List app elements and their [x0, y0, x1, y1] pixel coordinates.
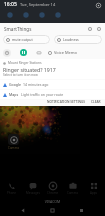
staticText: mute output	[12, 37, 33, 42]
button[interactable]: Messages	[24, 182, 41, 195]
button[interactable]: Camera	[64, 182, 81, 195]
staticText: 16:05	[4, 1, 17, 8]
staticText: Google	[9, 82, 21, 87]
other: Camera app	[8, 134, 19, 145]
staticText: Chrome	[47, 191, 59, 195]
button[interactable]: Devices	[85, 24, 94, 33]
staticText: SmartThings	[4, 26, 32, 32]
button[interactable]: Quick setting	[4, 10, 16, 20]
button[interactable]: Quick setting	[36, 10, 48, 20]
button[interactable]: Home	[47, 205, 58, 216]
staticText: Messages	[26, 191, 40, 195]
button[interactable]: Quick setting	[20, 10, 32, 20]
button[interactable]: Maps	[0, 90, 105, 99]
button[interactable]: Mount Ringer Stations	[0, 59, 105, 79]
button[interactable]: Cast	[36, 50, 42, 56]
staticText: CLEAR	[91, 100, 101, 104]
button[interactable]: CLEAR	[89, 98, 103, 106]
button[interactable]: Camera app	[6, 134, 20, 150]
staticText: Camera	[67, 191, 78, 195]
staticText: Apps	[90, 191, 98, 195]
button[interactable]: Pause	[20, 49, 27, 56]
button[interactable]: App	[47, 50, 53, 56]
staticText: Loudness	[63, 37, 79, 42]
button[interactable]: Quick setting	[52, 10, 64, 20]
staticText: Phone	[7, 191, 17, 195]
staticText: Select to turn it on now	[3, 73, 38, 77]
button[interactable]: Phone	[3, 182, 20, 195]
staticText: Light traffic on your route	[21, 92, 64, 97]
staticText: Voice Memo	[54, 50, 78, 55]
button[interactable]: Device	[3, 49, 11, 57]
button[interactable]: Back	[18, 205, 29, 216]
staticText: VIVACOM	[0, 199, 105, 204]
button[interactable]: More options	[94, 24, 103, 33]
staticText: 14 minutes ago	[23, 82, 49, 87]
staticText: Maps	[9, 92, 19, 97]
staticText: Ringer situated? 1917	[3, 66, 56, 73]
staticText: Tue, September 14	[20, 2, 56, 7]
button[interactable]: Google	[0, 80, 105, 89]
button[interactable]: Loudness	[54, 35, 102, 44]
button[interactable]: mute output	[3, 35, 50, 44]
staticText: NOTIFICATION SETTINGS	[47, 100, 86, 104]
button[interactable]: Chrome	[44, 182, 61, 195]
button[interactable]: Apps	[85, 182, 102, 195]
staticText: Mount Ringer Stations	[8, 61, 42, 65]
button[interactable]: NOTIFICATION SETTINGS	[45, 98, 88, 106]
button[interactable]: Settings	[94, 1, 102, 9]
staticText: Camera	[8, 146, 19, 150]
button[interactable]: Recents	[76, 205, 87, 216]
